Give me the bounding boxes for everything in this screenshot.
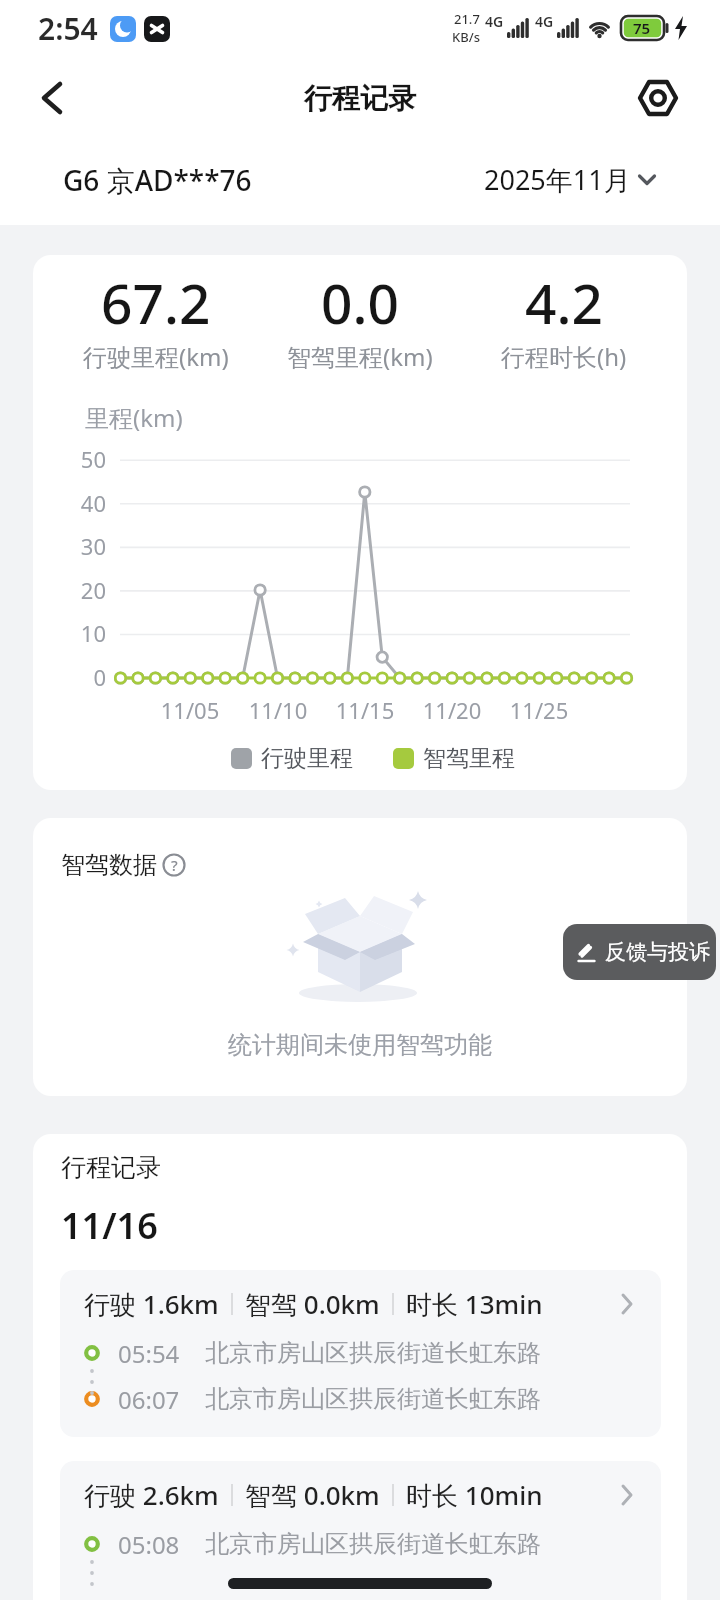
staticText: 北京市房山区拱辰街道长虹东路 bbox=[205, 1338, 541, 1368]
staticText: 11/15 bbox=[325, 695, 405, 725]
staticText: 时长 13min bbox=[406, 1286, 543, 1322]
staticText: 4G bbox=[535, 12, 554, 31]
button[interactable]: 2025年11月 bbox=[484, 161, 656, 198]
staticText: 行驶里程 bbox=[261, 744, 353, 773]
staticText: 里程(km) bbox=[85, 401, 183, 434]
staticText: 0.0 bbox=[321, 265, 399, 340]
button[interactable] bbox=[30, 76, 74, 120]
staticText: 05:54 bbox=[118, 1337, 180, 1370]
staticText: 30 bbox=[53, 531, 106, 561]
staticText: 40 bbox=[53, 488, 106, 518]
staticText: 21.7 bbox=[454, 10, 480, 28]
staticText: 4G bbox=[485, 12, 504, 31]
staticText: 11/25 bbox=[499, 695, 579, 725]
staticText: 11/20 bbox=[412, 695, 492, 725]
button[interactable]: 反馈与投诉 bbox=[563, 924, 716, 980]
staticText: KB/s bbox=[452, 28, 481, 46]
staticText: 智驾里程 bbox=[423, 744, 515, 773]
staticText: 11/10 bbox=[238, 695, 318, 725]
button[interactable] bbox=[636, 76, 680, 120]
staticText: 2025年11月 bbox=[484, 161, 631, 198]
staticText: 行程时长(h) bbox=[501, 340, 627, 373]
staticText: 行程记录 bbox=[61, 1152, 161, 1183]
staticText: 0 bbox=[53, 662, 106, 692]
staticText: 行驶 2.6km bbox=[84, 1477, 219, 1513]
staticText: 67.2 bbox=[101, 265, 211, 340]
button[interactable]: ? bbox=[162, 853, 186, 877]
staticText: G6 京AD***76 bbox=[63, 161, 252, 199]
staticText: 06:07 bbox=[118, 1383, 180, 1416]
staticText: 4.2 bbox=[525, 265, 603, 340]
button[interactable]: 行驶 2.6km bbox=[60, 1461, 661, 1600]
staticText: 智驾里程(km) bbox=[287, 340, 433, 373]
staticText: 20 bbox=[53, 575, 106, 605]
staticText: 11/16 bbox=[61, 1201, 158, 1250]
staticText: 智驾 0.0km bbox=[245, 1477, 380, 1513]
staticText: 北京市房山区拱辰街道长虹东路 bbox=[205, 1384, 541, 1414]
staticText: 智驾 0.0km bbox=[245, 1286, 380, 1322]
staticText: 北京市房山区拱辰街道长虹东路 bbox=[205, 1529, 541, 1559]
staticText: 75 bbox=[633, 18, 651, 38]
staticText: 智驾数据 bbox=[61, 850, 157, 880]
staticText: 05:08 bbox=[118, 1528, 180, 1561]
staticText: 行驶 1.6km bbox=[84, 1286, 219, 1322]
staticText: 2:54 bbox=[38, 8, 98, 49]
staticText: 时长 10min bbox=[406, 1477, 543, 1513]
staticText: 行程记录 bbox=[304, 81, 416, 116]
staticText: 11/05 bbox=[150, 695, 230, 725]
staticText: 行驶里程(km) bbox=[83, 340, 229, 373]
staticText: 10 bbox=[53, 618, 106, 648]
button[interactable]: 行驶 1.6km bbox=[60, 1270, 661, 1437]
staticText: ? bbox=[171, 855, 178, 875]
staticText: 50 bbox=[53, 444, 106, 474]
staticText: 反馈与投诉 bbox=[605, 939, 710, 965]
staticText: 统计期间未使用智驾功能 bbox=[228, 1030, 492, 1060]
